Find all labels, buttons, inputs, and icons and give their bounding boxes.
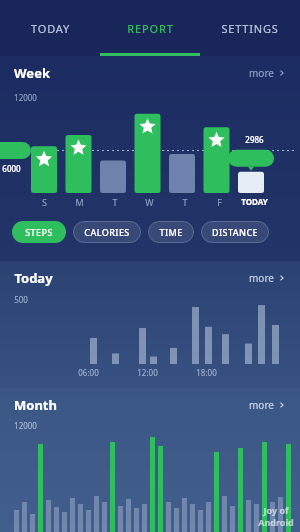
button[interactable]: STEPS [12,221,66,243]
staticText: 18:00 [196,367,217,378]
staticText: 06:00 [78,367,99,378]
staticText: Joy of Android [258,504,294,528]
button[interactable]: more [249,398,286,412]
staticText: TIME [159,226,183,238]
staticText: S [42,196,47,208]
staticText: Month [14,396,57,414]
staticText: STEPS [25,226,53,238]
staticText: more [249,271,274,285]
staticText: T [112,196,118,208]
staticText: 12:00 [137,367,158,378]
staticText: F [217,196,222,208]
staticText: M [75,196,84,208]
staticText: REPORT [127,21,174,36]
button[interactable]: more [249,271,286,285]
staticText: 500 [14,294,28,305]
staticText: 12000 [14,420,37,431]
button[interactable]: SETTINGS [200,0,300,56]
staticText: more [249,398,274,412]
button[interactable]: more [249,66,286,80]
staticText: Today [14,269,53,287]
button[interactable]: REPORT [100,0,200,56]
button[interactable]: DISTANCE [201,221,269,243]
staticText: TODAY [241,196,268,207]
staticText: CALORIES [84,226,130,238]
staticText: TODAY [31,21,70,36]
staticText: 6000 [2,163,21,174]
button[interactable]: CALORIES [73,221,141,243]
staticText: Week [14,64,50,82]
button[interactable]: TODAY [0,0,100,56]
staticText: 2986 [245,134,264,145]
staticText: T [182,196,188,208]
staticText: SETTINGS [221,21,279,36]
staticText: DISTANCE [212,226,258,238]
button[interactable]: TIME [148,221,194,243]
staticText: 12000 [14,92,37,103]
staticText: W [145,196,154,208]
staticText: more [249,66,274,80]
